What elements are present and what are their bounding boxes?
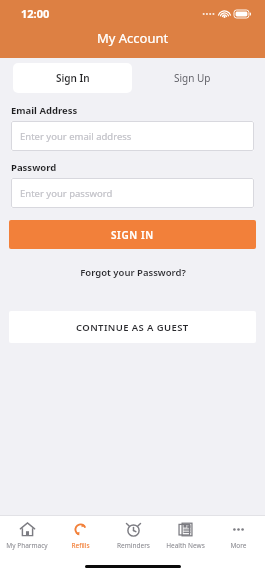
button[interactable]: Refills <box>54 516 106 554</box>
staticText: Reminders <box>117 541 150 550</box>
staticText: Sign In <box>56 71 90 85</box>
staticText: CONTINUE AS A GUEST <box>76 321 189 334</box>
staticText: Health News <box>166 541 205 550</box>
staticText: Enter your email address <box>20 130 132 143</box>
staticText: Sign Up <box>174 71 211 85</box>
staticText: My Pharmacy <box>6 541 48 550</box>
staticText: Refills <box>71 541 90 550</box>
button[interactable]: Sign Up <box>132 63 252 93</box>
button[interactable]: Health News <box>159 516 211 554</box>
staticText: My Account <box>97 29 169 47</box>
button[interactable]: Reminders <box>107 516 159 554</box>
button[interactable]: CONTINUE AS A GUEST <box>9 311 256 343</box>
button[interactable]: Sign In <box>13 63 132 93</box>
staticText: Email Address <box>11 104 78 117</box>
staticText: Forgot your Password? <box>80 266 186 279</box>
button[interactable]: Enter your password <box>11 178 254 208</box>
button[interactable]: Forgot your Password? <box>72 263 194 282</box>
staticText: More <box>230 541 247 550</box>
button[interactable]: Enter your email address <box>11 121 254 151</box>
staticText: Enter your password <box>20 187 113 200</box>
button[interactable]: My Pharmacy <box>1 516 53 554</box>
staticText: SIGN IN <box>111 228 154 242</box>
button[interactable]: More <box>212 516 264 554</box>
button[interactable]: SIGN IN <box>9 220 256 249</box>
staticText: 12:00 <box>21 6 50 21</box>
staticText: Password <box>11 161 57 174</box>
